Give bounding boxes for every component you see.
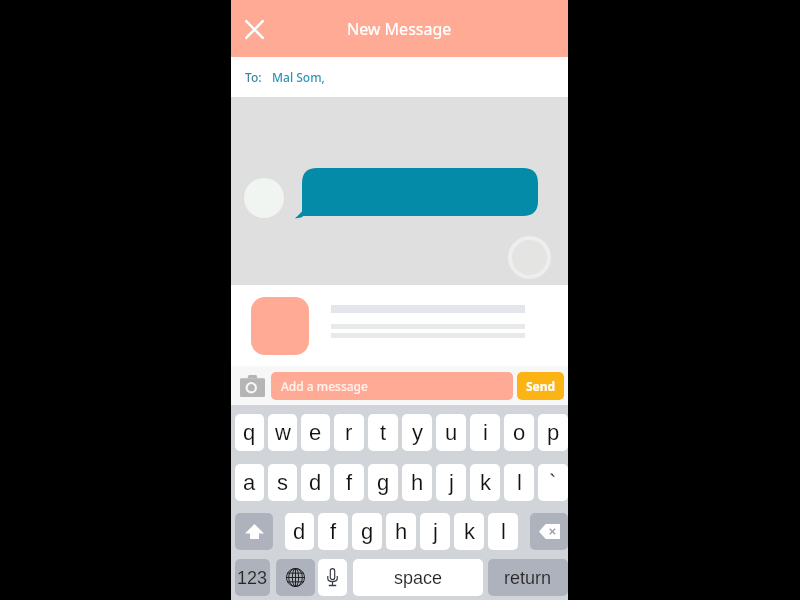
button[interactable]: Sent message status (508, 236, 551, 279)
staticText: return (504, 568, 552, 588)
button[interactable]: Message bubble (298, 168, 538, 216)
button[interactable]: Contact avatar (244, 178, 284, 218)
button[interactable]: g (352, 513, 382, 550)
button[interactable]: h (386, 513, 416, 550)
button[interactable]: 123 (235, 559, 270, 596)
staticText: j (433, 519, 438, 544)
button[interactable]: Add a message (271, 372, 513, 400)
staticText: l (517, 470, 522, 495)
button[interactable]: s (268, 464, 297, 501)
staticText: New Message (347, 18, 452, 40)
button[interactable]: ` (538, 464, 568, 501)
button[interactable]: Shift (235, 513, 273, 550)
staticText: Send (526, 378, 556, 394)
button[interactable]: y (402, 414, 432, 451)
button[interactable]: Send (517, 372, 564, 400)
staticText: space (394, 568, 443, 588)
staticText: h (411, 470, 424, 495)
staticText: d (293, 519, 306, 544)
staticText: g (361, 519, 374, 544)
button[interactable]: o (504, 414, 534, 451)
button[interactable]: Camera (237, 371, 267, 401)
button[interactable]: g (368, 464, 398, 501)
button[interactable]: j (420, 513, 450, 550)
button[interactable]: t (368, 414, 398, 451)
staticText: To: (245, 69, 262, 85)
staticText: ` (549, 470, 557, 495)
button[interactable]: f (334, 464, 364, 501)
button[interactable]: j (436, 464, 466, 501)
button[interactable]: l (488, 513, 518, 550)
staticText: a (243, 470, 256, 495)
button[interactable]: e (301, 414, 330, 451)
button[interactable]: f (318, 513, 348, 550)
button[interactable]: d (301, 464, 330, 501)
staticText: 123 (237, 568, 268, 588)
staticText: t (380, 420, 387, 445)
button[interactable]: space (353, 559, 483, 596)
staticText: i (483, 420, 488, 445)
button[interactable]: i (470, 414, 500, 451)
staticText: f (330, 519, 337, 544)
button[interactable]: u (436, 414, 466, 451)
button[interactable]: k (470, 464, 500, 501)
button[interactable]: a (235, 464, 264, 501)
button[interactable]: return (488, 559, 568, 596)
staticText: w (275, 420, 291, 445)
button[interactable]: Change keyboard language (276, 559, 315, 596)
button[interactable]: Attachment preview (231, 285, 568, 366)
button[interactable]: q (235, 414, 264, 451)
staticText: p (547, 420, 560, 445)
staticText: k (464, 519, 475, 544)
staticText: k (480, 470, 491, 495)
staticText: j (449, 470, 454, 495)
staticText: h (395, 519, 408, 544)
staticText: y (412, 420, 423, 445)
button[interactable]: Voice input (318, 559, 347, 596)
staticText: q (243, 420, 256, 445)
button[interactable]: p (538, 414, 568, 451)
staticText: Add a message (281, 378, 368, 394)
staticText: o (513, 420, 526, 445)
staticText: s (277, 470, 288, 495)
staticText: g (377, 470, 390, 495)
button[interactable]: Close (234, 9, 274, 49)
button[interactable]: Backspace (530, 513, 568, 550)
staticText: e (309, 420, 322, 445)
staticText: r (345, 420, 353, 445)
staticText: f (346, 470, 353, 495)
button[interactable]: r (334, 414, 364, 451)
button[interactable]: l (504, 464, 534, 501)
button[interactable]: w (268, 414, 297, 451)
staticText: u (445, 420, 458, 445)
staticText: d (309, 470, 322, 495)
button[interactable]: k (454, 513, 484, 550)
staticText: Mal Som, (272, 69, 325, 85)
button[interactable]: d (285, 513, 314, 550)
staticText: l (501, 519, 506, 544)
button[interactable]: h (402, 464, 432, 501)
